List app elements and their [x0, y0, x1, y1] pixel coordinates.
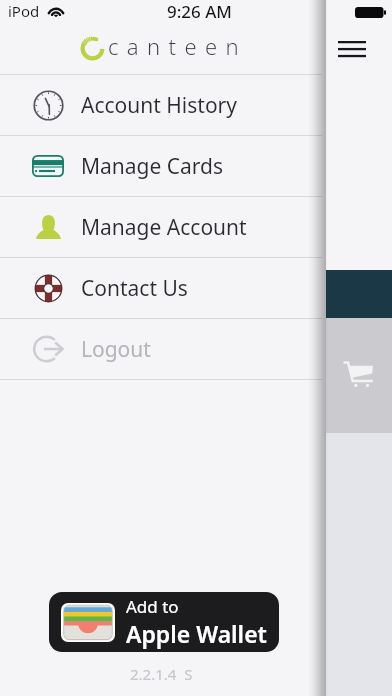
staticText: Manage Cards — [81, 152, 224, 181]
button[interactable]: Add to — [49, 592, 279, 652]
button[interactable]: Manage Cards — [0, 136, 322, 196]
staticText: canteen — [108, 31, 248, 61]
staticText: Account History — [81, 91, 237, 120]
staticText: 9:26 AM — [167, 0, 232, 22]
staticText: Contact Us — [81, 274, 188, 303]
staticText: Logout — [81, 335, 151, 364]
staticText: 2.2.1.4 S — [130, 664, 193, 684]
button[interactable]: Open navigation menu — [327, 33, 377, 65]
staticText: Add to — [126, 595, 179, 618]
button[interactable]: Contact Us — [0, 258, 322, 318]
button[interactable]: Manage Account — [0, 197, 322, 257]
button[interactable]: Logout — [0, 319, 322, 379]
staticText: Apple Wallet — [126, 618, 267, 649]
other: Cart — [344, 360, 373, 387]
staticText: iPod — [8, 1, 40, 21]
button[interactable]: Account History — [0, 75, 322, 135]
staticText: Manage Account — [81, 213, 247, 242]
